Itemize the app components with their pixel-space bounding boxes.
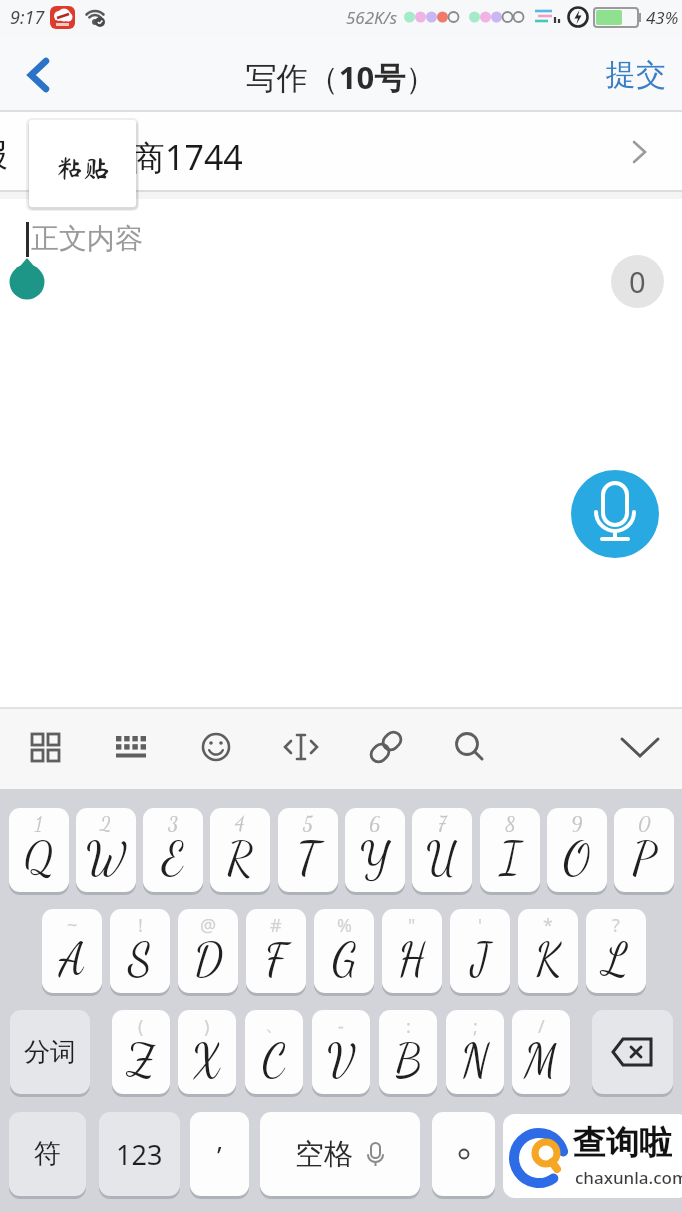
staticText: E xyxy=(162,833,184,886)
button[interactable]: 123 xyxy=(99,1112,180,1196)
staticText: P xyxy=(632,833,656,886)
staticText: / xyxy=(538,1014,545,1039)
staticText: S xyxy=(128,934,152,987)
button[interactable]: 查询啦 xyxy=(503,1114,682,1198)
button[interactable]: ! xyxy=(110,909,170,993)
staticText: 8 xyxy=(505,812,516,836)
button[interactable]: 粘贴 xyxy=(29,120,136,207)
staticText: 空格 xyxy=(295,1136,353,1173)
staticText: Y xyxy=(360,833,390,886)
button[interactable]: 1 xyxy=(9,808,69,892)
staticText: D xyxy=(194,934,223,987)
button[interactable]: - xyxy=(312,1010,370,1094)
button[interactable] xyxy=(432,1112,495,1196)
button[interactable]: " xyxy=(382,909,442,993)
button[interactable] xyxy=(191,722,241,772)
button[interactable]: 6 xyxy=(345,808,405,892)
button[interactable]: 7 xyxy=(412,808,472,892)
staticText: chaxunla.com xyxy=(575,1166,682,1189)
button[interactable] xyxy=(276,722,326,772)
staticText: Q xyxy=(24,833,55,886)
button[interactable] xyxy=(592,1010,673,1094)
button[interactable]: % xyxy=(314,909,374,993)
button[interactable]: @ xyxy=(178,909,238,993)
staticText: 正文内容 xyxy=(31,221,143,256)
staticText: I xyxy=(500,833,521,886)
staticText: 4 xyxy=(235,812,245,836)
staticText: 123 xyxy=(116,1136,163,1173)
staticText: 、 xyxy=(265,1014,283,1037)
staticText: 5 xyxy=(303,812,313,836)
staticText: 商1744 xyxy=(131,134,243,180)
staticText: C xyxy=(262,1035,286,1088)
button[interactable] xyxy=(571,470,659,558)
button[interactable]: 8 xyxy=(480,808,540,892)
button[interactable]: 5 xyxy=(278,808,338,892)
staticText: H xyxy=(398,934,426,987)
staticText: 43% xyxy=(646,6,679,29)
staticText: M xyxy=(524,1035,558,1088)
button[interactable]: 0 xyxy=(611,255,664,308)
button[interactable]: ? xyxy=(586,909,646,993)
staticText: 分词 xyxy=(24,1036,76,1069)
button[interactable]: ~ xyxy=(42,909,102,993)
staticText: L xyxy=(603,934,629,987)
staticText: G xyxy=(332,934,357,987)
staticText: 提交 xyxy=(606,56,666,94)
button[interactable] xyxy=(10,48,66,100)
button[interactable]: 9 xyxy=(547,808,607,892)
button[interactable]: 3 xyxy=(143,808,203,892)
button[interactable]: * xyxy=(518,909,578,993)
button[interactable]: ; xyxy=(446,1010,504,1094)
staticText: X xyxy=(192,1035,222,1088)
button[interactable]: ) xyxy=(178,1010,236,1094)
staticText: U xyxy=(426,833,458,886)
button[interactable] xyxy=(21,722,71,772)
staticText: 粘贴 xyxy=(56,154,110,181)
staticText: 6 xyxy=(369,812,381,836)
staticText: 2 xyxy=(100,812,112,836)
staticText: ) xyxy=(204,1014,210,1039)
staticText: 符 xyxy=(34,1137,61,1171)
staticText: ’ xyxy=(217,1137,222,1172)
button[interactable] xyxy=(0,112,682,190)
button[interactable]: # xyxy=(246,909,306,993)
button[interactable] xyxy=(445,722,495,772)
staticText: 9 xyxy=(571,812,583,836)
button[interactable] xyxy=(612,722,668,772)
staticText: A xyxy=(59,934,86,987)
button[interactable]: ( xyxy=(112,1010,170,1094)
button[interactable]: ’ xyxy=(190,1112,249,1196)
staticText: J xyxy=(471,934,490,987)
button[interactable]: : xyxy=(379,1010,437,1094)
staticText: B xyxy=(395,1035,422,1088)
staticText: 写作（10号） xyxy=(0,56,682,98)
button[interactable]: 2 xyxy=(76,808,136,892)
staticText: W xyxy=(86,833,126,886)
button[interactable]: 提交 xyxy=(596,52,676,98)
staticText: F xyxy=(265,934,287,987)
button[interactable] xyxy=(106,722,156,772)
button[interactable]: 4 xyxy=(210,808,270,892)
staticText: ! xyxy=(138,913,143,938)
staticText: O xyxy=(563,833,591,886)
button[interactable]: 、 xyxy=(245,1010,303,1094)
staticText: T xyxy=(297,833,319,886)
staticText: R xyxy=(227,833,253,886)
staticText: K xyxy=(535,934,561,987)
button[interactable]: 空格 xyxy=(260,1112,420,1196)
staticText: * xyxy=(543,913,553,938)
button[interactable]: 符 xyxy=(9,1112,86,1196)
staticText: - xyxy=(338,1014,344,1039)
staticText: ? xyxy=(612,913,620,938)
staticText: 查询啦 xyxy=(573,1122,672,1164)
staticText: 3 xyxy=(168,812,179,836)
staticText: Z xyxy=(127,1035,155,1088)
staticText: 562K/s xyxy=(346,6,398,29)
button[interactable]: 0 xyxy=(614,808,674,892)
button[interactable]: ' xyxy=(450,909,510,993)
button[interactable]: 分词 xyxy=(10,1010,90,1094)
button[interactable]: / xyxy=(512,1010,570,1094)
button[interactable] xyxy=(361,722,411,772)
staticText: % xyxy=(337,913,352,938)
